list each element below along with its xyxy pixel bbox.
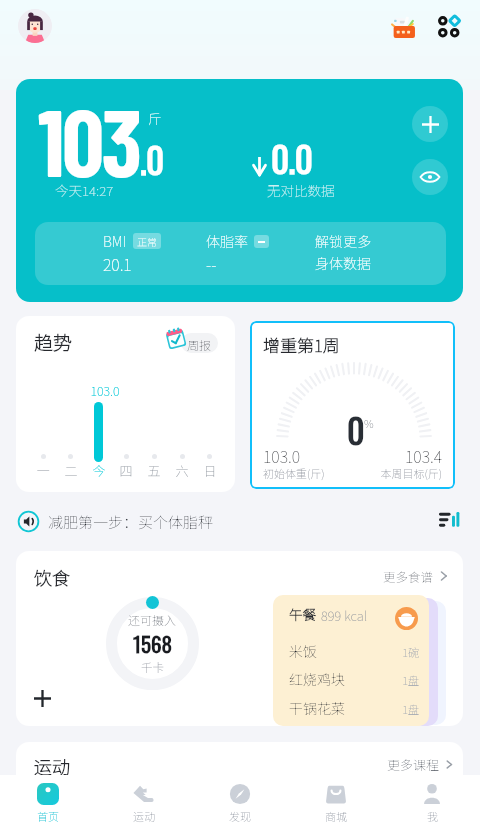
staticText: -- bbox=[206, 252, 217, 275]
button[interactable]: 发现 bbox=[192, 775, 288, 829]
button[interactable]: 减肥第一步：买个体脂秤 bbox=[18, 510, 214, 533]
button[interactable]: 更多课程 bbox=[387, 755, 454, 774]
staticText: 体脂率 bbox=[206, 231, 248, 251]
staticText: 更多食谱 bbox=[383, 567, 434, 585]
staticText: 0.0 bbox=[271, 132, 313, 184]
staticText: 103.4 bbox=[362, 444, 442, 467]
staticText: 饮食 bbox=[34, 564, 70, 590]
button[interactable]: Ranking bbox=[439, 509, 460, 530]
staticText: 还可摄入 bbox=[128, 611, 177, 628]
staticText: 今 bbox=[90, 461, 108, 480]
staticText: 20.1 bbox=[103, 252, 132, 275]
staticText: 今天14:27 bbox=[55, 180, 114, 200]
staticText: 初始体重(斤) bbox=[263, 465, 325, 481]
button[interactable]: 首页 bbox=[0, 775, 96, 829]
staticText: 米饭 bbox=[289, 641, 317, 661]
staticText: 1盘 bbox=[385, 701, 419, 717]
staticText: 商城 bbox=[325, 808, 347, 824]
staticText: 干锅花菜 bbox=[289, 698, 345, 718]
staticText: 1碗 bbox=[385, 644, 419, 660]
staticText: 身体数据 bbox=[315, 253, 371, 273]
button[interactable]: 运动 bbox=[96, 775, 192, 829]
button[interactable]: Store basket bbox=[390, 13, 416, 39]
button[interactable]: 我 bbox=[384, 775, 480, 829]
button[interactable]: Add food bbox=[34, 690, 51, 707]
staticText: 无对比数据 bbox=[267, 180, 335, 200]
button[interactable]: Profile bbox=[18, 9, 52, 43]
staticText: 趋势 bbox=[34, 328, 73, 356]
button[interactable]: BMI bbox=[35, 222, 446, 285]
staticText: 周报 bbox=[187, 336, 212, 353]
staticText: 0 bbox=[347, 404, 365, 454]
staticText: 运动 bbox=[133, 808, 155, 824]
staticText: 899 kcal bbox=[321, 606, 368, 625]
button[interactable]: Show or hide data bbox=[412, 159, 448, 195]
staticText: 本周目标(斤) bbox=[362, 465, 442, 481]
staticText: 六 bbox=[173, 461, 191, 480]
button[interactable]: 周报 bbox=[181, 333, 218, 353]
staticText: 一 bbox=[34, 461, 52, 480]
staticText: 1568 bbox=[133, 628, 172, 659]
staticText: 发现 bbox=[229, 808, 251, 824]
staticText: 我 bbox=[427, 808, 438, 824]
button[interactable]: 商城 bbox=[288, 775, 384, 829]
staticText: % bbox=[364, 415, 374, 431]
staticText: 解锁更多 bbox=[315, 231, 371, 251]
button[interactable]: Add weight record bbox=[412, 106, 448, 142]
staticText: 103.0 bbox=[84, 381, 126, 399]
staticText: 更多课程 bbox=[387, 755, 440, 774]
staticText: BMI bbox=[103, 231, 127, 251]
staticText: 运动 bbox=[34, 753, 70, 779]
staticText: 四 bbox=[117, 461, 135, 480]
staticText: 二 bbox=[62, 461, 80, 480]
button[interactable]: More apps bbox=[437, 15, 460, 38]
button[interactable]: 增重第1周 bbox=[250, 321, 455, 489]
staticText: 日 bbox=[201, 461, 219, 480]
staticText: 首页 bbox=[37, 808, 59, 824]
staticText: 红烧鸡块 bbox=[289, 669, 345, 689]
staticText: 正常 bbox=[137, 234, 157, 248]
staticText: 103 bbox=[38, 84, 140, 196]
staticText: 斤 bbox=[148, 108, 162, 128]
button[interactable]: 午餐 bbox=[273, 595, 429, 726]
staticText: 103.0 bbox=[263, 444, 301, 467]
button[interactable]: 更多食谱 bbox=[383, 567, 449, 585]
staticText: 千卡 bbox=[141, 659, 164, 676]
staticText: .0 bbox=[140, 133, 164, 185]
staticText: 1盘 bbox=[385, 672, 419, 688]
staticText: 增重第1周 bbox=[263, 332, 340, 357]
button[interactable]: 趋势 bbox=[16, 316, 235, 492]
staticText: 减肥第一步：买个体脂秤 bbox=[48, 511, 214, 533]
staticText: 五 bbox=[145, 461, 163, 480]
staticText: 午餐 bbox=[289, 604, 316, 624]
